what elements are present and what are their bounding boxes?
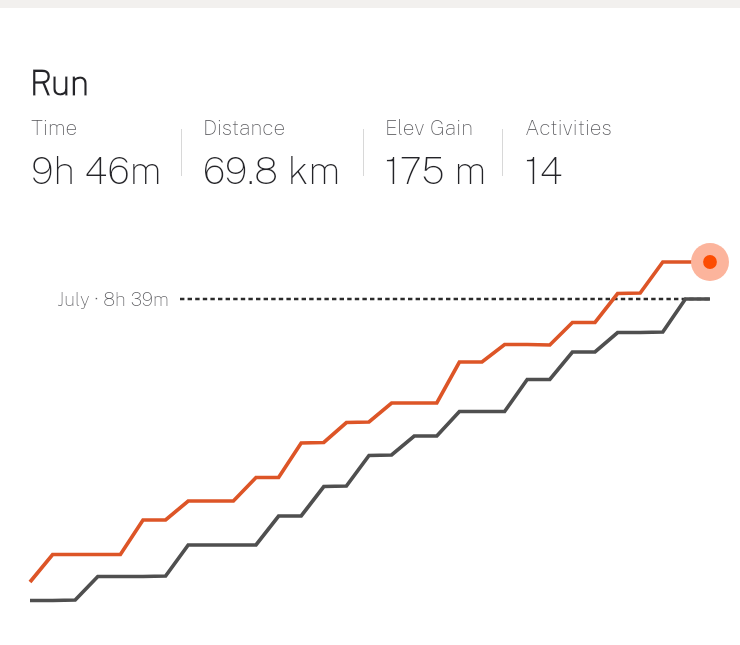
- staticText: Time: [31, 115, 78, 140]
- staticText: Run: [30, 64, 89, 103]
- button[interactable]: Run: [23, 57, 93, 101]
- button[interactable]: Elev Gain: [385, 115, 487, 185]
- staticText: July · 8h 39m: [57, 288, 169, 310]
- staticText: 175 m: [385, 148, 487, 193]
- button[interactable]: Time: [31, 115, 162, 185]
- staticText: Distance: [203, 115, 286, 140]
- staticText: 9h 46m: [31, 148, 162, 193]
- button[interactable]: Distance: [203, 115, 341, 185]
- staticText: 69.8 km: [203, 148, 341, 193]
- staticText: Activities: [525, 115, 612, 140]
- other: Monthly running progress chart: [0, 0, 740, 645]
- button[interactable]: Activities: [525, 115, 612, 185]
- staticText: Elev Gain: [385, 115, 473, 140]
- staticText: 14: [525, 148, 563, 193]
